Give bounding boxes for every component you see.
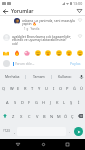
button[interactable]: U <box>43 81 50 95</box>
button[interactable]: Emoji reaction <box>75 48 84 57</box>
staticText: C <box>28 114 31 119</box>
staticText: Ç <box>71 114 74 119</box>
staticText: J <box>50 100 52 105</box>
button[interactable]: Tamam <box>26 72 51 81</box>
button[interactable]: Emoji reaction <box>22 48 31 57</box>
staticText: A <box>6 100 9 105</box>
button[interactable]: Voice input <box>77 72 85 81</box>
staticText: S <box>14 100 17 105</box>
button[interactable]: Like <box>77 18 83 24</box>
button[interactable]: I <box>50 81 57 95</box>
button[interactable]: F <box>26 95 33 109</box>
button[interactable]: Paylas <box>69 59 82 68</box>
button[interactable]: oskana_uz yanimda, seni maasiyla yaptin … <box>0 17 85 32</box>
button[interactable]: Backspace <box>76 109 85 123</box>
button[interactable]: Q <box>0 81 8 95</box>
staticText: Yorumlar <box>11 8 34 15</box>
button[interactable]: Back <box>12 139 24 150</box>
button[interactable]: Filter <box>73 7 85 15</box>
staticText: Yorum ekle... <box>15 62 35 66</box>
button[interactable]: A <box>3 95 11 109</box>
button[interactable]: N <box>48 109 55 123</box>
button[interactable]: Recents <box>61 139 73 150</box>
button[interactable]: Emoji reaction <box>54 48 63 57</box>
button[interactable]: R <box>22 81 29 95</box>
staticText: 13:00 <box>73 1 83 6</box>
button[interactable]: M <box>55 109 62 123</box>
staticText: I <box>53 86 55 91</box>
button[interactable]: E <box>15 81 22 95</box>
button[interactable]: Ğ <box>71 81 78 95</box>
staticText: Y <box>38 86 41 91</box>
button[interactable]: Home <box>37 139 49 150</box>
staticText: oskana_uz yanimda, seni maasiyla yaptin … <box>22 18 75 26</box>
button[interactable]: Back <box>0 7 11 15</box>
staticText: L <box>63 100 66 105</box>
staticText: . <box>69 129 71 134</box>
staticText: N <box>50 114 54 119</box>
button[interactable]: Emoji reaction <box>43 48 52 57</box>
staticText: ?123 <box>3 129 10 133</box>
button[interactable]: Send <box>74 127 83 136</box>
staticText: W <box>10 86 14 91</box>
button[interactable]: Shift <box>0 109 9 123</box>
staticText: 1 g Yanıtla <box>24 27 40 31</box>
staticText: Ş <box>70 100 73 105</box>
button[interactable]: Y <box>36 81 43 95</box>
staticText: K <box>56 100 59 105</box>
button[interactable]: Ş <box>68 95 75 109</box>
button[interactable]: G <box>33 95 40 109</box>
button[interactable]: Merhaba <box>0 72 25 81</box>
staticText: Ü <box>80 86 83 91</box>
staticText: Kullanıcı <box>58 74 72 79</box>
button[interactable]: Emoji reaction <box>1 48 10 57</box>
staticText: X <box>20 114 23 119</box>
button[interactable]: B <box>41 109 48 123</box>
staticText: , <box>14 129 16 134</box>
button[interactable]: İ <box>75 95 82 109</box>
button[interactable]: P <box>64 81 71 95</box>
staticText: E <box>17 86 20 91</box>
button[interactable]: J <box>47 95 54 109</box>
button[interactable]: H <box>40 95 47 109</box>
staticText: Merhaba <box>5 74 20 79</box>
button[interactable]: ayakbilet Bronzlasma cok kapsamlidir; et… <box>0 33 85 47</box>
button[interactable]: Emoji reaction <box>12 48 21 57</box>
button[interactable]: V <box>33 109 41 123</box>
button[interactable]: Ç <box>69 109 76 123</box>
button[interactable]: X <box>17 109 25 123</box>
staticText: P <box>66 86 69 91</box>
button[interactable]: Emoji reaction <box>33 48 42 57</box>
button[interactable]: L <box>61 95 68 109</box>
staticText: İ <box>78 100 80 105</box>
button[interactable]: ?123 <box>0 123 12 139</box>
button[interactable]: Z <box>9 109 17 123</box>
staticText: Paylas <box>70 61 81 66</box>
staticText: Z <box>12 114 15 119</box>
button[interactable]: D <box>19 95 26 109</box>
staticText: Tamam <box>33 74 45 79</box>
staticText: D <box>21 100 24 105</box>
staticText: T <box>31 86 34 91</box>
staticText: G <box>35 100 38 105</box>
button[interactable]: S <box>11 95 19 109</box>
button[interactable]: Ö <box>62 109 69 123</box>
button[interactable]: C <box>25 109 33 123</box>
staticText: O <box>59 86 63 91</box>
staticText: Ö <box>64 114 68 119</box>
button[interactable]: Like <box>77 34 83 40</box>
button[interactable]: , <box>12 123 17 139</box>
staticText: ayakbilet Bronzlasma cok kapsamlidir; et… <box>12 34 72 46</box>
staticText: Ğ <box>73 86 76 91</box>
button[interactable]: W <box>8 81 15 95</box>
button[interactable]: K <box>54 95 61 109</box>
button[interactable]: Ü <box>78 81 85 95</box>
button[interactable]: O <box>57 81 64 95</box>
button[interactable]: Emoji reaction <box>64 48 73 57</box>
button[interactable]: T <box>29 81 36 95</box>
button[interactable]: Kullanıcı <box>52 72 77 81</box>
staticText: F <box>28 100 31 105</box>
staticText: V <box>36 114 39 119</box>
